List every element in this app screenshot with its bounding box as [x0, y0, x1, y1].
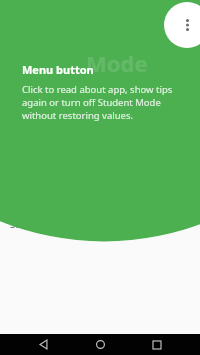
button[interactable]: Turn off auto rotate	[0, 91, 200, 115]
button[interactable]: Start some apps	[0, 211, 200, 237]
button[interactable]: Toggle	[164, 21, 190, 35]
staticText: Turn on power saving mode	[10, 72, 160, 85]
button[interactable]: Turn off screen lock	[0, 116, 200, 142]
button[interactable]: Change the sound profile	[0, 16, 200, 40]
staticText: Mode	[86, 48, 148, 78]
staticText: Turn off Wi-Fi	[10, 47, 160, 60]
button[interactable]: Turn on power saving mode	[0, 66, 200, 90]
button[interactable]: Toggle	[164, 46, 190, 60]
button[interactable]: Turn off Wi-Fi	[0, 41, 200, 65]
button[interactable]: Back	[29, 334, 57, 355]
button[interactable]: More options	[164, 2, 200, 48]
button[interactable]: Home	[86, 334, 114, 355]
staticText: 68%	[169, 3, 183, 13]
staticText: Click to read about app, show tips again…	[22, 83, 186, 122]
staticText: Menu button	[22, 62, 94, 77]
staticText: Turn off auto rotate	[10, 97, 160, 110]
button[interactable]: Toggle	[164, 217, 190, 231]
button[interactable]: Recent apps	[143, 334, 171, 355]
staticText: Start some apps	[10, 218, 160, 231]
